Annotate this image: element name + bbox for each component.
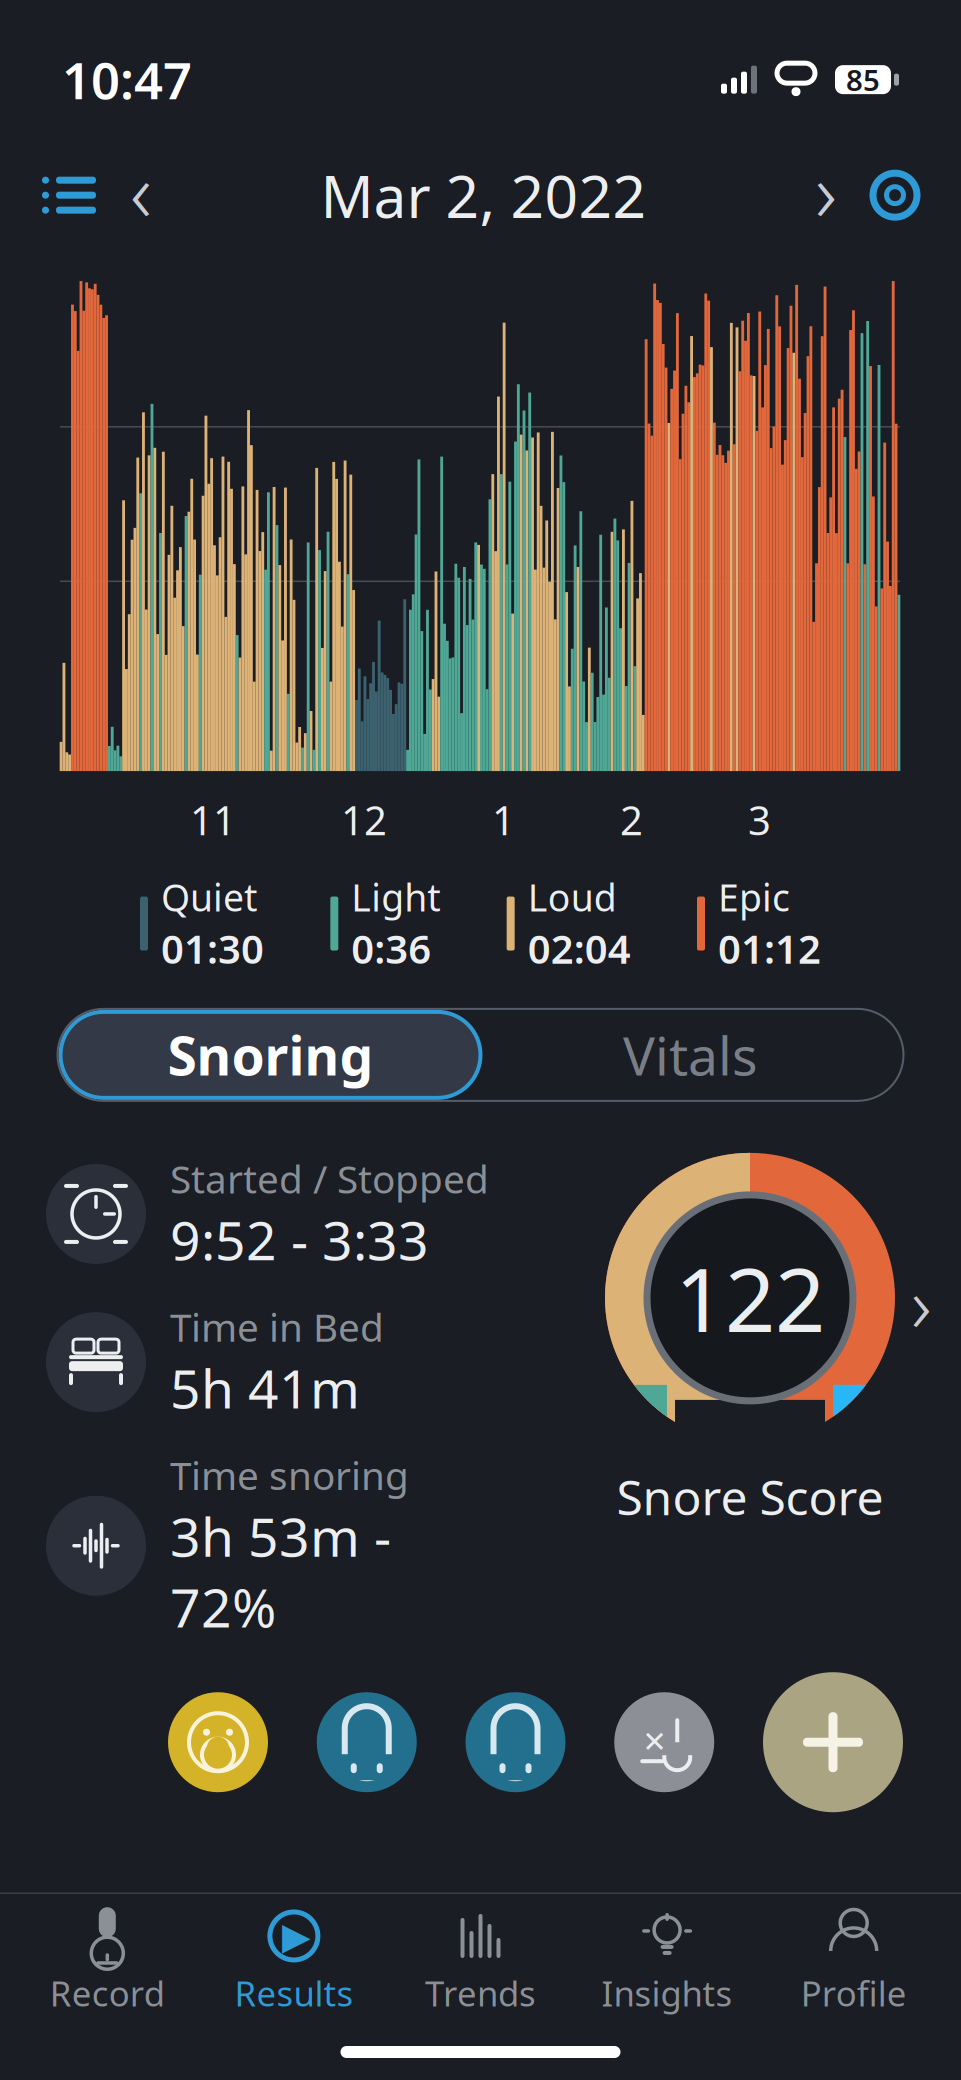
staticText: 9:52 - 3:33 xyxy=(170,1204,429,1275)
staticText: › xyxy=(911,1251,931,1354)
staticText: 11 xyxy=(190,793,236,846)
staticText: Epic xyxy=(718,872,790,922)
staticText: Profile xyxy=(801,1970,907,2016)
button[interactable]: Mouthpiece xyxy=(317,1692,417,1792)
button[interactable]: Record xyxy=(14,1894,201,2028)
staticText: 12 xyxy=(341,793,387,846)
staticText: Time in Bed xyxy=(170,1301,384,1352)
staticText: Mar 2, 2022 xyxy=(320,156,646,234)
staticText: 2 xyxy=(620,793,643,846)
button[interactable]: Mouthpiece two xyxy=(465,1692,565,1792)
staticText: Snoring xyxy=(167,1019,373,1090)
staticText: Results xyxy=(234,1970,353,2016)
staticText: 122 xyxy=(675,1239,825,1356)
button[interactable]: Previous day xyxy=(110,135,172,255)
staticText: 01:30 xyxy=(161,922,264,975)
staticText: Time snoring xyxy=(170,1449,409,1500)
button[interactable]: 122 xyxy=(605,1153,931,1529)
staticText: Insights xyxy=(602,1970,733,2016)
button[interactable]: Session list xyxy=(28,163,110,228)
button[interactable]: Profile xyxy=(760,1894,947,2028)
staticText: 3 xyxy=(748,793,771,846)
button[interactable]: Snoring xyxy=(60,1012,480,1098)
button[interactable]: Settings xyxy=(857,169,933,221)
staticText: 85 xyxy=(846,60,880,99)
staticText: Loud xyxy=(528,872,617,922)
staticText: 01:12 xyxy=(718,922,821,975)
staticText: ▶ xyxy=(282,1915,311,1957)
staticText: ✕ xyxy=(642,1725,667,1758)
staticText: Quiet xyxy=(161,872,257,922)
staticText: 5h 41m xyxy=(170,1352,360,1423)
staticText: Vitals xyxy=(623,1019,758,1090)
staticText: 3h 53m - 72% xyxy=(170,1501,391,1642)
staticText: › xyxy=(815,135,837,245)
staticText: Started / Stopped xyxy=(170,1153,489,1204)
button[interactable]: Add tag xyxy=(763,1672,903,1812)
staticText: 10:47 xyxy=(62,46,192,113)
staticText: Snore Score xyxy=(616,1465,883,1529)
button[interactable]: Trends xyxy=(387,1894,574,2028)
staticText: Record xyxy=(50,1970,165,2016)
staticText: Trends xyxy=(425,1970,536,2016)
button[interactable]: Nasal xyxy=(614,1692,714,1792)
button[interactable]: Next day xyxy=(795,135,857,255)
button[interactable]: Vitals xyxy=(480,1012,900,1098)
staticText: ‹ xyxy=(130,135,152,245)
staticText: 1 xyxy=(492,793,515,846)
button[interactable]: Insights xyxy=(574,1894,760,2028)
staticText: Light xyxy=(351,872,440,922)
staticText: 02:04 xyxy=(528,922,631,975)
staticText: 0:36 xyxy=(351,922,431,975)
button[interactable]: ▶ xyxy=(201,1894,387,2028)
button[interactable]: Mood xyxy=(168,1692,268,1792)
